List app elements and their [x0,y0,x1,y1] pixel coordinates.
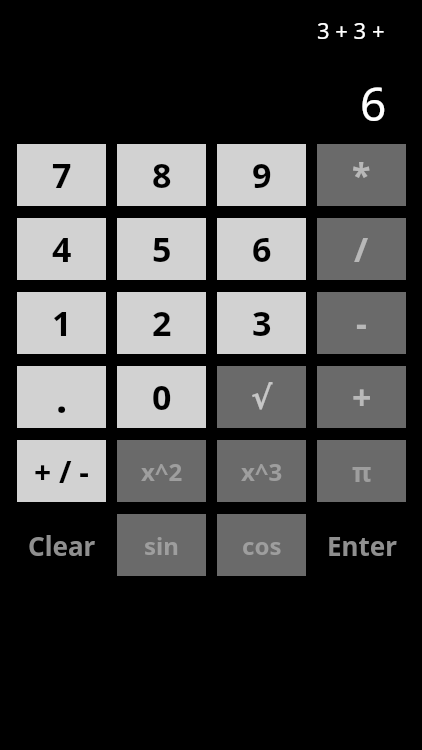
staticText: cos [242,529,282,562]
button[interactable]: Clear [17,514,106,576]
button[interactable]: sin [117,514,206,576]
staticText: 3 [252,300,272,346]
button[interactable]: / [317,218,406,280]
button[interactable]: 2 [117,292,206,354]
button[interactable]: 8 [117,144,206,206]
staticText: Clear [28,528,96,563]
button[interactable]: 1 [17,292,106,354]
button[interactable]: Enter [317,514,406,576]
button[interactable]: √ [217,366,306,428]
button[interactable]: 5 [117,218,206,280]
button[interactable]: * [317,144,406,206]
button[interactable]: x^2 [117,440,206,502]
button[interactable]: 9 [217,144,306,206]
button[interactable]: cos [217,514,306,576]
staticText: 8 [152,152,172,198]
button[interactable]: + / - [17,440,106,502]
button[interactable]: 6 [217,218,306,280]
button[interactable]: x^3 [217,440,306,502]
staticText: + [352,374,372,420]
staticText: sin [144,529,179,562]
staticText: π [352,454,372,489]
staticText: 9 [252,152,272,198]
staticText: √ [251,379,273,416]
staticText: - [356,300,367,346]
staticText: 4 [52,226,72,272]
button[interactable]: 7 [17,144,106,206]
staticText: 6 [360,72,387,135]
staticText: 6 [252,226,272,272]
button[interactable]: π [317,440,406,502]
staticText: 7 [52,152,72,198]
staticText: . [56,370,68,424]
button[interactable]: . [17,366,106,428]
staticText: / [354,226,369,272]
button[interactable]: + [317,366,406,428]
staticText: x^3 [241,455,283,488]
staticText: x^2 [141,455,183,488]
staticText: * [352,152,371,198]
button[interactable]: 4 [17,218,106,280]
staticText: 2 [152,300,172,346]
staticText: + / - [34,451,89,492]
staticText: 1 [52,300,72,346]
button[interactable]: 0 [117,366,206,428]
staticText: Enter [327,528,397,563]
staticText: 5 [152,226,172,272]
staticText: 3 + 3 + [317,15,385,45]
button[interactable]: - [317,292,406,354]
staticText: 0 [152,374,172,420]
button[interactable]: 3 [217,292,306,354]
